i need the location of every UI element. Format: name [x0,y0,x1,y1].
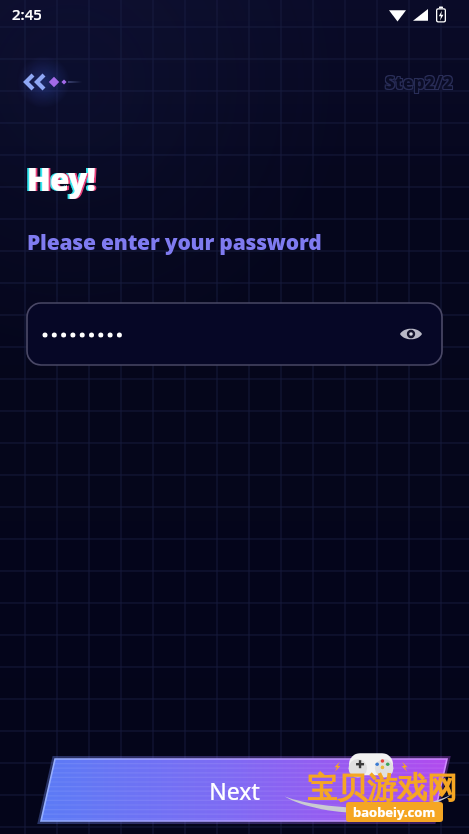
staticText: Step2/2 [386,71,454,94]
button[interactable]: Show password [27,303,442,365]
staticText: Step2/2 [384,70,452,93]
button[interactable]: Next [0,757,469,823]
staticText: Step2/2 [385,70,453,93]
button[interactable]: Step2/2 [385,71,453,94]
staticText: Hey! [29,158,98,200]
staticText: Next [209,775,260,806]
staticText: Step2/2 [385,72,453,95]
button[interactable]: Show password [394,317,428,351]
staticText: 2:45 [12,4,42,24]
staticText: 宝贝游戏网 [307,769,457,807]
staticText: Hey! [25,158,94,200]
staticText: baobeiy.com [353,803,436,821]
staticText: Step2/2 [386,70,454,93]
staticText: Hey! [27,158,96,200]
staticText: Please enter your password [27,228,322,257]
staticText: Step2/2 [384,72,452,95]
button[interactable]: Back [22,62,88,102]
staticText: Step2/2 [385,71,453,94]
staticText: Step2/2 [386,72,454,95]
staticText: Step2/2 [384,71,452,94]
